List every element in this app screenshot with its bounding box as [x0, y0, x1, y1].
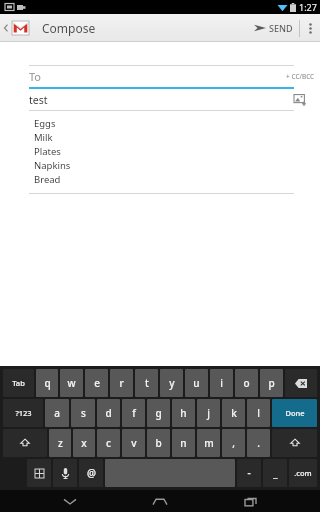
button[interactable]: Recent apps — [230, 490, 270, 512]
button[interactable]: q — [36, 369, 58, 397]
button[interactable]: SEND — [248, 14, 299, 42]
button[interactable]: f — [122, 399, 145, 427]
button[interactable]: m — [197, 429, 220, 457]
staticText: n — [180, 436, 187, 450]
staticText: p — [268, 376, 275, 390]
button[interactable]: k — [222, 399, 245, 427]
button[interactable]: Shift — [3, 429, 47, 457]
staticText: _ — [273, 466, 278, 480]
staticText: 1:27 — [299, 1, 317, 13]
button[interactable]: n — [172, 429, 195, 457]
staticText: Done — [285, 408, 305, 418]
staticText: SEND — [269, 22, 293, 34]
staticText: y — [169, 376, 175, 390]
staticText: ?123 — [15, 408, 32, 418]
staticText: , — [232, 436, 235, 450]
button[interactable]: Delete — [285, 369, 317, 397]
button[interactable]: Hide keyboard — [50, 490, 90, 512]
staticText: Eggs — [34, 117, 56, 130]
button[interactable]: test — [29, 89, 280, 110]
button[interactable]: Home — [140, 490, 180, 512]
button[interactable]: t — [135, 369, 158, 397]
button[interactable]: More options — [300, 14, 320, 42]
button[interactable]: y — [160, 369, 183, 397]
staticText: @ — [87, 466, 96, 480]
staticText: Plates — [34, 145, 61, 158]
staticText: j — [207, 406, 210, 420]
button[interactable]: w — [60, 369, 83, 397]
button[interactable]: To — [29, 66, 280, 87]
button[interactable]: a — [45, 399, 69, 427]
button[interactable]: b — [147, 429, 170, 457]
staticText: a — [54, 406, 60, 420]
button[interactable]: o — [235, 369, 258, 397]
button[interactable]: x — [73, 429, 95, 457]
button[interactable]: p — [260, 369, 283, 397]
staticText: d — [105, 406, 112, 420]
button[interactable]: @ — [79, 459, 103, 487]
button[interactable]: Navigate up — [0, 14, 33, 42]
button[interactable]: ?123 — [3, 399, 43, 427]
staticText: i — [220, 376, 223, 390]
staticText: Tab — [12, 378, 25, 388]
button[interactable]: Voice input — [53, 459, 77, 487]
button[interactable]: i — [210, 369, 233, 397]
staticText: Bread — [34, 173, 61, 186]
staticText: Napkins — [34, 159, 71, 172]
staticText: f — [132, 406, 136, 420]
button[interactable]: _ — [263, 459, 287, 487]
staticText: q — [44, 376, 51, 390]
staticText: Compose — [42, 20, 96, 36]
button[interactable]: u — [185, 369, 208, 397]
staticText: . — [257, 436, 260, 450]
staticText: w — [67, 376, 76, 390]
staticText: e — [94, 376, 100, 390]
staticText: g — [155, 406, 162, 420]
staticText: o — [243, 376, 250, 390]
button[interactable]: e — [85, 369, 108, 397]
button[interactable]: + CC/BCC — [280, 66, 320, 87]
button[interactable]: . — [247, 429, 270, 457]
button[interactable]: s — [71, 399, 95, 427]
button[interactable]: z — [49, 429, 71, 457]
staticText: l — [257, 406, 260, 420]
staticText: u — [193, 376, 200, 390]
staticText: Milk — [34, 131, 53, 144]
button[interactable]: d — [97, 399, 120, 427]
button[interactable]: c — [97, 429, 120, 457]
staticText: x — [81, 436, 87, 450]
button[interactable]: Tab — [3, 369, 34, 397]
staticText: To — [29, 69, 42, 84]
staticText: - — [247, 466, 251, 480]
button[interactable]: r — [110, 369, 133, 397]
staticText: b — [155, 436, 162, 450]
staticText: k — [231, 406, 237, 420]
staticText: test — [29, 93, 48, 107]
staticText: z — [58, 436, 63, 450]
button[interactable]: - — [237, 459, 261, 487]
button[interactable]: g — [147, 399, 170, 427]
staticText: t — [145, 376, 149, 390]
button[interactable]: , — [222, 429, 245, 457]
staticText: .com — [294, 468, 312, 478]
staticText: + CC/BCC — [286, 72, 315, 81]
staticText: v — [131, 436, 137, 450]
staticText: s — [81, 406, 86, 420]
button[interactable]: j — [197, 399, 220, 427]
staticText: h — [180, 406, 187, 420]
button[interactable]: v — [122, 429, 145, 457]
button[interactable]: Attach image — [280, 89, 320, 110]
button[interactable]: .com — [289, 459, 317, 487]
staticText: m — [204, 436, 214, 450]
button[interactable]: h — [172, 399, 195, 427]
button[interactable]: Switch keyboard — [27, 459, 51, 487]
staticText: r — [119, 376, 124, 390]
staticText: c — [106, 436, 111, 450]
button[interactable]: Done — [272, 399, 317, 427]
button[interactable]: Eggs — [0, 111, 320, 193]
button[interactable]: Shift — [272, 429, 317, 457]
button[interactable]: l — [247, 399, 270, 427]
